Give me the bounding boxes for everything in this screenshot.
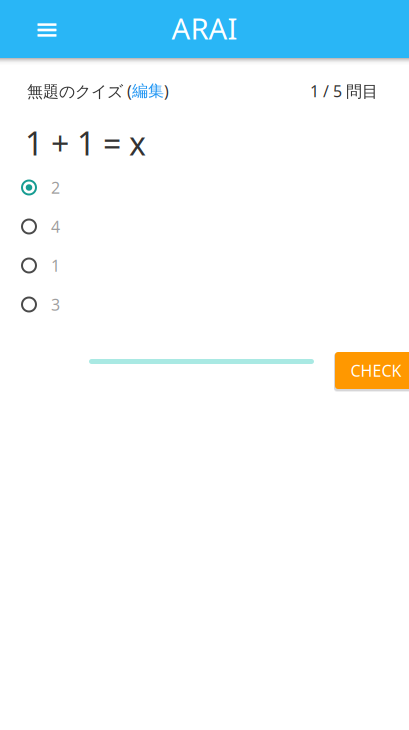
button[interactable]: Menu — [24, 5, 70, 55]
staticText: CHECK — [350, 360, 401, 381]
button[interactable]: 1 — [21, 246, 281, 285]
staticText: 無題のクイズ ( — [27, 80, 132, 102]
staticText: 2 — [51, 177, 60, 198]
staticText: 1 + 1 = x — [25, 122, 146, 164]
staticText: 1 / 5 問目 — [310, 80, 378, 102]
staticText: 3 — [51, 294, 60, 315]
staticText: ) — [164, 80, 169, 102]
staticText: 4 — [51, 216, 60, 237]
button[interactable]: 3 — [21, 285, 281, 324]
button[interactable]: 編集 — [132, 81, 164, 101]
button[interactable]: 2 — [21, 168, 281, 207]
button[interactable]: 4 — [21, 207, 281, 246]
staticText: 編集 — [132, 81, 164, 101]
button[interactable]: CHECK — [335, 352, 409, 389]
staticText: ARAI — [171, 8, 237, 47]
staticText: 1 — [51, 255, 60, 276]
